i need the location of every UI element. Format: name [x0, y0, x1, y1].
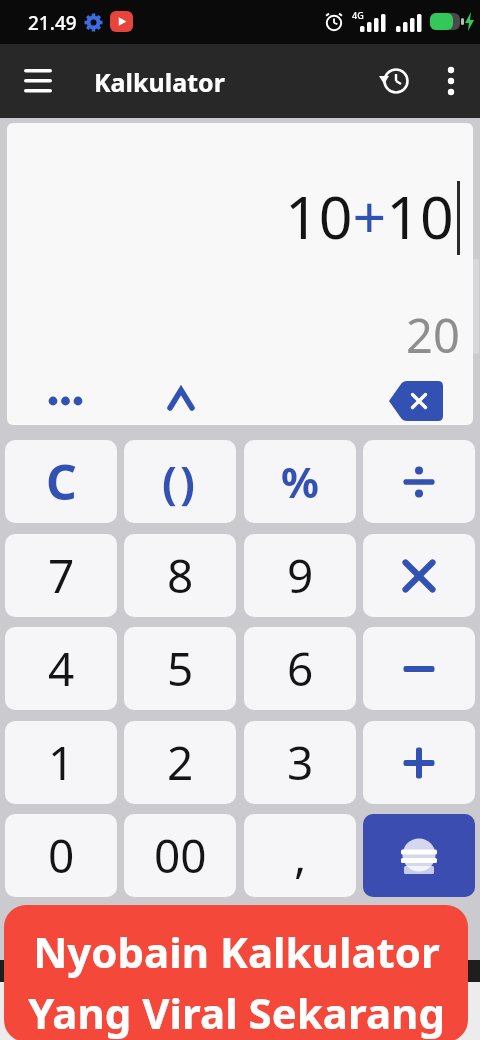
- staticText: 2: [167, 731, 194, 794]
- staticText: 4G: [352, 9, 364, 21]
- staticText: 10+10: [285, 176, 454, 256]
- staticText: 1: [48, 731, 75, 794]
- button[interactable]: [14, 37, 62, 85]
- button[interactable]: (): [124, 440, 236, 523]
- staticText: 9: [287, 544, 314, 607]
- button[interactable]: ,: [244, 814, 356, 897]
- button[interactable]: 9: [244, 534, 356, 617]
- button[interactable]: [363, 534, 475, 617]
- staticText: 7: [48, 544, 75, 607]
- button[interactable]: %: [244, 440, 356, 523]
- staticText: 6: [287, 637, 314, 700]
- button[interactable]: 2: [124, 721, 236, 804]
- staticText: 4: [48, 637, 75, 700]
- staticText: 5: [167, 637, 194, 700]
- button[interactable]: [363, 814, 475, 897]
- button[interactable]: C: [5, 440, 117, 523]
- button[interactable]: [37, 377, 107, 423]
- button[interactable]: 6: [244, 627, 356, 710]
- button[interactable]: Nyobain Kalkulator: [4, 905, 468, 1040]
- staticText: 8: [167, 544, 194, 607]
- button[interactable]: 4: [5, 627, 117, 710]
- button[interactable]: [363, 721, 475, 804]
- staticText: %: [281, 453, 319, 510]
- button[interactable]: 0: [5, 814, 117, 897]
- staticText: (): [162, 452, 198, 512]
- button[interactable]: 1: [5, 721, 117, 804]
- button[interactable]: 7: [5, 534, 117, 617]
- button[interactable]: 8: [124, 534, 236, 617]
- staticText: 00: [154, 824, 207, 887]
- button[interactable]: [382, 373, 458, 419]
- button[interactable]: [363, 440, 475, 523]
- staticText: Kalkulator: [94, 65, 225, 99]
- button[interactable]: 00: [124, 814, 236, 897]
- staticText: 0: [48, 824, 75, 887]
- button[interactable]: [372, 57, 420, 105]
- staticText: C: [46, 449, 77, 514]
- staticText: ,: [294, 824, 307, 887]
- staticText: Nyobain Kalkulator: [33, 923, 440, 979]
- staticText: Yang Viral Sekarang: [28, 984, 445, 1040]
- button[interactable]: [428, 57, 472, 105]
- button[interactable]: [157, 375, 207, 425]
- staticText: 20: [406, 303, 460, 367]
- staticText: 3: [287, 731, 314, 794]
- button[interactable]: 5: [124, 627, 236, 710]
- button[interactable]: 3: [244, 721, 356, 804]
- staticText: 21.49: [28, 10, 77, 36]
- button[interactable]: [363, 627, 475, 710]
